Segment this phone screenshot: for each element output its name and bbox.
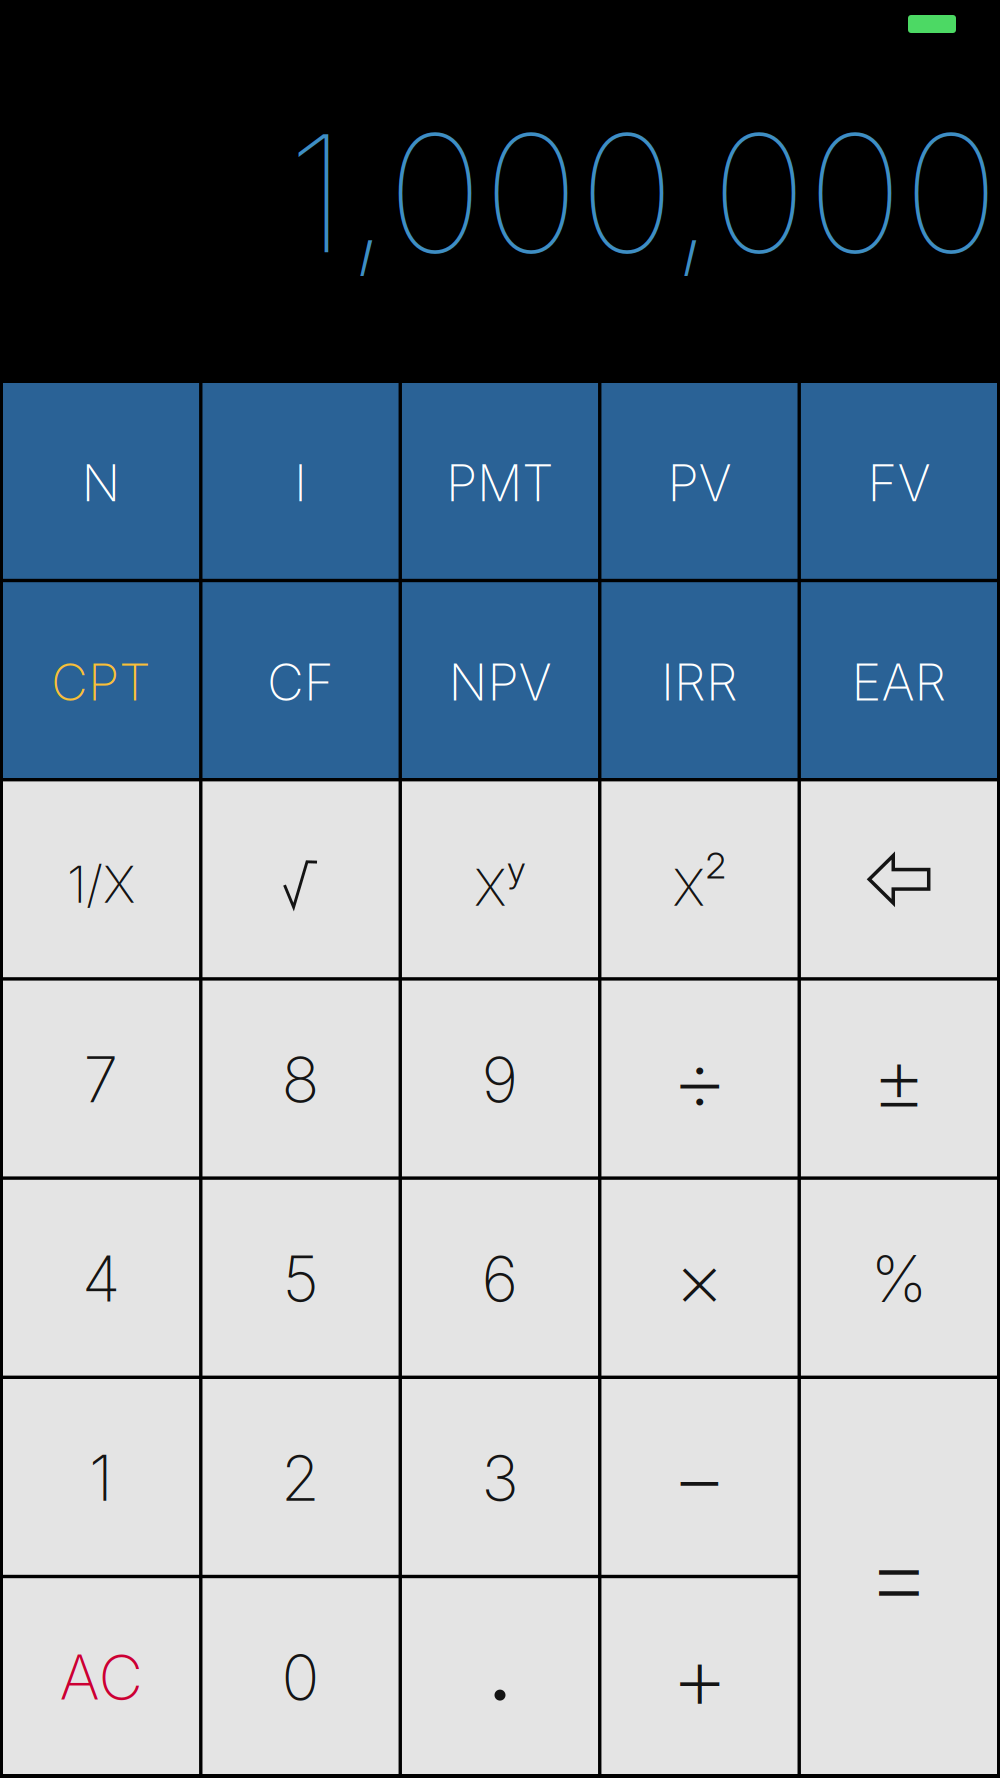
staticText: ± [871, 1029, 926, 1132]
staticText: N [81, 452, 120, 513]
staticText: 4 [82, 1241, 120, 1317]
staticText: AC [59, 1640, 142, 1714]
button[interactable]: 5 [202, 1180, 399, 1376]
button[interactable]: 0 [202, 1578, 399, 1774]
button[interactable]: 4 [3, 1180, 199, 1376]
button[interactable]: EAR [801, 582, 997, 778]
staticText: PMT [446, 452, 554, 513]
staticText: 5 [282, 1241, 318, 1317]
staticText: X [474, 857, 506, 918]
staticText: 2 [281, 1440, 320, 1516]
button[interactable]: 8 [202, 981, 399, 1176]
staticText: 1 [89, 1440, 113, 1516]
button[interactable]: AC [3, 1578, 199, 1774]
button[interactable]: 1/X [3, 781, 199, 977]
button[interactable]: X [402, 781, 598, 977]
staticText: − [671, 1424, 728, 1530]
button[interactable]: 7 [3, 981, 199, 1176]
staticText: 1,000,000 [287, 95, 999, 291]
button[interactable]: % [801, 1180, 997, 1376]
button[interactable]: 2 [202, 1379, 399, 1575]
button[interactable]: ± [801, 981, 997, 1176]
button[interactable]: PMT [402, 383, 598, 579]
button[interactable]: ÷ [601, 981, 797, 1176]
button[interactable]: FV [801, 383, 997, 579]
button[interactable]: Square root [202, 781, 399, 977]
staticText: 3 [481, 1440, 518, 1516]
button[interactable]: 1 [3, 1379, 199, 1575]
staticText: EAR [851, 651, 946, 713]
button[interactable]: CPT [3, 582, 199, 778]
button[interactable]: Backspace [801, 781, 997, 977]
button[interactable]: CF [202, 582, 399, 778]
button[interactable]: 6 [402, 1180, 598, 1376]
staticText: NPV [448, 651, 551, 713]
button[interactable]: N [3, 383, 199, 579]
staticText: = [864, 1510, 933, 1639]
button[interactable]: I [202, 383, 399, 579]
staticText: + [670, 1622, 728, 1732]
staticText: 1/X [67, 854, 135, 915]
staticText: CPT [51, 651, 151, 713]
button[interactable]: X [601, 781, 797, 977]
staticText: 0 [281, 1639, 319, 1715]
button[interactable]: NPV [402, 582, 598, 778]
button[interactable]: − [601, 1379, 797, 1575]
button[interactable]: Decimal point [402, 1578, 598, 1774]
staticText: FV [867, 452, 930, 513]
staticText: % [870, 1240, 927, 1317]
button[interactable]: 3 [402, 1379, 598, 1575]
staticText: 9 [481, 1042, 518, 1117]
button[interactable]: 9 [402, 981, 598, 1176]
staticText: 2 [705, 843, 726, 887]
button[interactable]: = [801, 1379, 997, 1774]
staticText: X [672, 857, 704, 918]
staticText: PV [667, 452, 731, 513]
button[interactable]: IRR [601, 582, 797, 778]
staticText: 7 [83, 1042, 118, 1117]
button[interactable]: PV [601, 383, 797, 579]
staticText: CF [267, 651, 334, 713]
button[interactable]: + [601, 1578, 797, 1774]
staticText: ÷ [670, 1025, 728, 1134]
staticText: I [294, 452, 307, 513]
staticText: 6 [481, 1241, 518, 1317]
staticText: y [507, 847, 526, 891]
button[interactable]: × [601, 1180, 797, 1376]
staticText: IRR [661, 651, 738, 713]
staticText: × [674, 1232, 724, 1325]
staticText: 8 [281, 1042, 319, 1117]
